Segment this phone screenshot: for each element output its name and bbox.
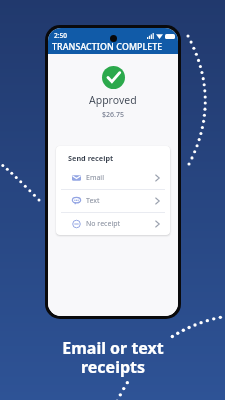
staticText: Email xyxy=(86,173,104,183)
staticText: $26.75 xyxy=(102,110,124,120)
staticText: Send receipt xyxy=(68,153,114,163)
staticText: Text xyxy=(86,196,100,206)
staticText: Email or text receipts xyxy=(62,337,164,378)
staticText: Approved xyxy=(89,93,137,107)
staticText: TRANSACTION COMPLETE xyxy=(52,41,163,53)
staticText: 2:50 xyxy=(54,31,67,40)
staticText: No receipt xyxy=(86,219,121,229)
button[interactable]: Email xyxy=(56,167,170,189)
button[interactable]: Text xyxy=(56,190,170,212)
button[interactable]: No receipt xyxy=(56,213,170,235)
